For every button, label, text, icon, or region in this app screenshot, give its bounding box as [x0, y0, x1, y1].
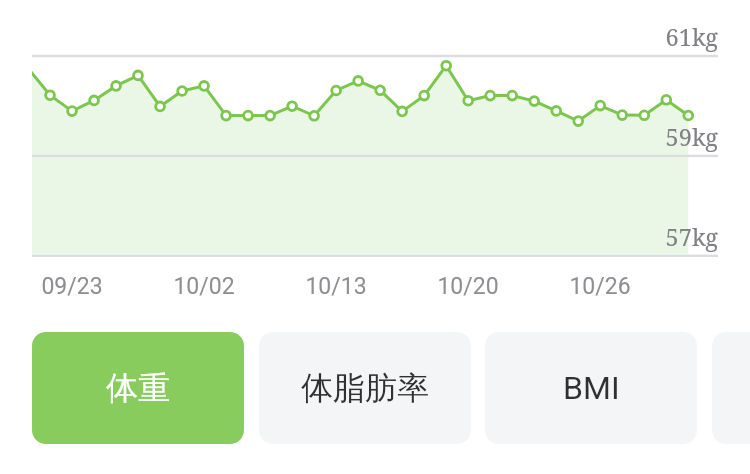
staticText: 57kg: [0, 221, 718, 253]
staticText: 体脂肪率: [301, 368, 429, 408]
button[interactable]: 体脂肪率: [259, 332, 471, 444]
staticText: BMI: [563, 369, 620, 407]
staticText: 59kg: [0, 121, 718, 153]
staticText: 61kg: [0, 21, 718, 53]
other: Weight history chart: [0, 0, 750, 474]
staticText: 10/02: [144, 273, 264, 300]
staticText: 10/26: [540, 273, 660, 300]
button[interactable]: 体重: [32, 332, 244, 444]
button[interactable]: BMI: [485, 332, 697, 444]
staticText: 10/20: [408, 273, 528, 300]
staticText: 10/13: [276, 273, 396, 300]
staticText: 体重: [106, 368, 170, 408]
staticText: 09/23: [12, 273, 132, 300]
